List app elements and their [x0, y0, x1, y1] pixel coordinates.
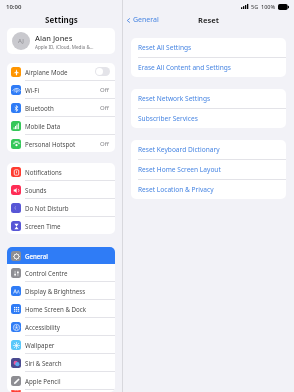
staticText: Wallpaper	[25, 341, 111, 349]
button[interactable]: Reset Location & Privacy	[131, 180, 286, 199]
staticText: General	[25, 252, 111, 260]
button[interactable]: Home Screen & Dock	[7, 300, 115, 317]
staticText: Sounds	[25, 186, 111, 194]
staticText: Home Screen & Dock	[25, 305, 111, 313]
staticText: Settings	[45, 14, 78, 25]
staticText: Erase All Content and Settings	[138, 63, 232, 72]
staticText: Screen Time	[25, 222, 111, 230]
other: Back	[126, 18, 131, 23]
button[interactable]: Subscriber Services	[131, 109, 286, 128]
staticText: 100%	[261, 3, 276, 10]
button[interactable]: Wallpaper	[7, 336, 115, 353]
button[interactable]: AJ	[7, 28, 115, 54]
staticText: Notifications	[25, 168, 111, 176]
staticText: General	[133, 15, 159, 25]
button[interactable]: Display & Brightness	[7, 282, 115, 299]
button[interactable]: Reset All Settings	[131, 38, 286, 57]
staticText: Apple Pencil	[25, 377, 111, 385]
staticText: Airplane Mode	[25, 68, 95, 76]
staticText: Subscriber Services	[138, 114, 198, 123]
staticText: Reset All Settings	[138, 43, 192, 52]
button[interactable]: Reset Network Settings	[131, 89, 286, 108]
button[interactable]: Personal Hotspot	[7, 135, 115, 152]
staticText: Wi-Fi	[25, 86, 100, 94]
button[interactable]: Back	[126, 15, 159, 25]
staticText: Control Centre	[25, 269, 111, 277]
button[interactable]: Screen Time	[7, 217, 115, 234]
staticText: Off	[100, 140, 109, 148]
staticText: Display & Brightness	[25, 287, 111, 295]
button[interactable]: Erase All Content and Settings	[131, 58, 286, 77]
button[interactable]: Sounds	[7, 181, 115, 198]
button[interactable]: Apple Pencil	[7, 372, 115, 389]
staticText: Personal Hotspot	[25, 140, 100, 148]
staticText: Off	[100, 86, 109, 94]
button[interactable]: Siri & Search	[7, 354, 115, 371]
button[interactable]: Mobile Data	[7, 117, 115, 134]
button[interactable]: General	[7, 247, 115, 264]
button[interactable]: Wi-Fi	[7, 81, 115, 98]
staticText: 5G	[251, 3, 259, 10]
staticText: AJ	[18, 37, 24, 45]
button[interactable]: Control Centre	[7, 264, 115, 281]
button[interactable]: Touch ID & Passcode	[7, 390, 115, 392]
button[interactable]: Bluetooth	[7, 99, 115, 116]
staticText: Accessibility	[25, 323, 111, 331]
staticText: Siri & Search	[25, 359, 111, 367]
staticText: Reset Keyboard Dictionary	[138, 145, 220, 154]
staticText: Reset Network Settings	[138, 94, 211, 103]
staticText: Reset	[198, 15, 219, 25]
staticText: Reset Location & Privacy	[138, 185, 214, 194]
button[interactable]: Airplane Mode	[7, 63, 115, 80]
button[interactable]: Do Not Disturb	[7, 199, 115, 216]
staticText: Alan Jones	[35, 33, 73, 43]
button[interactable]: Reset Home Screen Layout	[131, 160, 286, 179]
staticText: Do Not Disturb	[25, 204, 111, 212]
staticText: Apple ID, iCloud, Media &...	[35, 44, 94, 50]
button[interactable]: Reset Keyboard Dictionary	[131, 140, 286, 159]
staticText: Reset Home Screen Layout	[138, 165, 221, 174]
staticText: Off	[100, 104, 109, 112]
staticText: Mobile Data	[25, 122, 111, 130]
button[interactable]: Accessibility	[7, 318, 115, 335]
staticText: 10:00	[6, 3, 22, 11]
staticText: Bluetooth	[25, 104, 100, 112]
button[interactable]: Notifications	[7, 163, 115, 180]
